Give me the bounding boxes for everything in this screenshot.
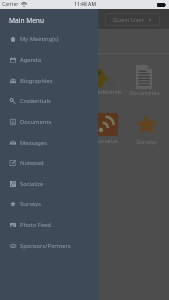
button[interactable]: Guest User <box>105 13 160 26</box>
staticText: 11:48 AM <box>74 1 96 8</box>
staticText: Surveys <box>136 138 157 146</box>
button[interactable]: Documents <box>0 112 98 132</box>
staticText: Photo Feed <box>20 221 51 229</box>
button[interactable]: Documents <box>125 63 163 97</box>
staticText: Carrier <box>2 1 19 8</box>
staticText: Credentials <box>20 97 51 105</box>
button[interactable]: Surveys <box>127 112 165 146</box>
button[interactable]: Credentials <box>87 62 125 96</box>
staticText: Biographies <box>20 77 53 85</box>
button[interactable]: Socialize <box>87 111 125 145</box>
button[interactable]: Socialize <box>0 174 98 194</box>
staticText: Messages <box>20 139 47 147</box>
button[interactable]: Agenda <box>0 50 98 70</box>
button[interactable]: My Meeting(s) <box>0 29 98 49</box>
staticText: Documents <box>20 118 52 126</box>
staticText: Main Menu <box>9 16 45 25</box>
staticText: Socialize <box>20 180 44 188</box>
staticText: Guest User <box>113 16 145 24</box>
button[interactable]: Notepad <box>0 153 98 173</box>
button[interactable]: Messages <box>0 133 98 153</box>
button[interactable]: Surveys <box>0 194 98 214</box>
button[interactable]: Credentials <box>0 91 98 111</box>
staticText: Socialize <box>95 137 118 145</box>
staticText: Credentials <box>91 88 122 96</box>
staticText: Notepad <box>20 159 44 167</box>
button[interactable]: Biographies <box>0 71 98 91</box>
staticText: Documents <box>129 89 160 97</box>
staticText: My Meeting(s) <box>20 35 59 43</box>
staticText: Agenda <box>20 56 41 64</box>
button[interactable]: Sponsors/Partners <box>0 236 98 256</box>
staticText: Surveys <box>20 200 41 208</box>
staticText: Sponsors/Partners <box>20 242 71 250</box>
button[interactable]: Photo Feed <box>0 215 98 235</box>
